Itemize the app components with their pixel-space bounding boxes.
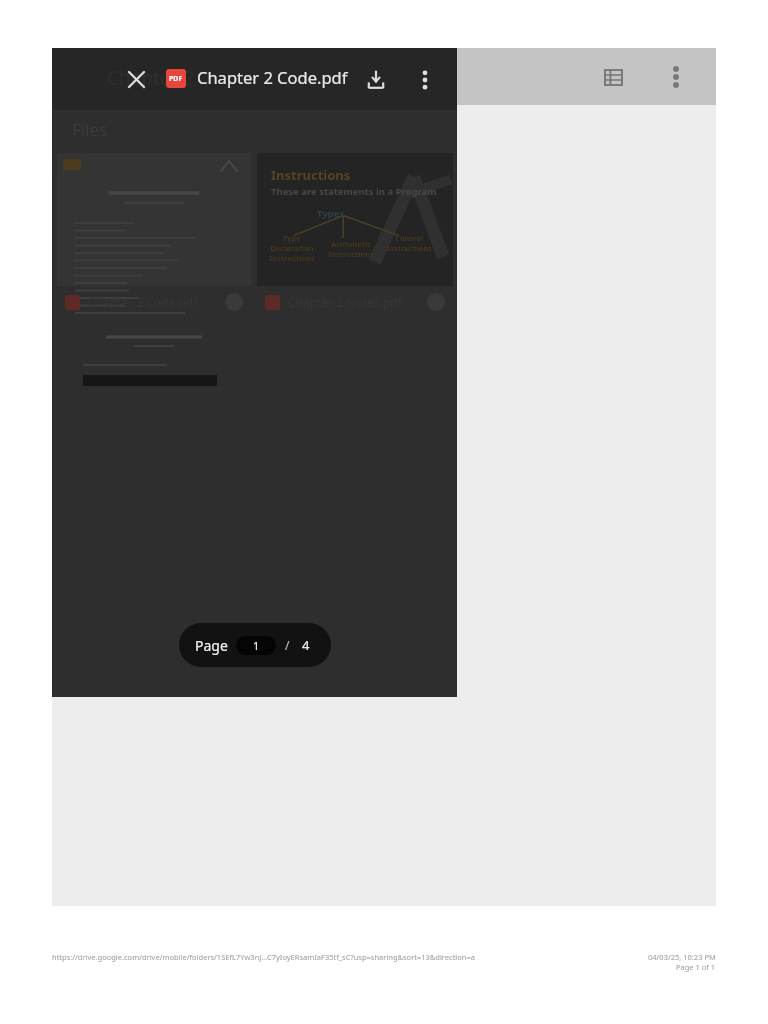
staticText: PDF	[169, 74, 183, 84]
button[interactable]: More options	[407, 62, 443, 98]
staticText: Page 1 of 1	[676, 962, 716, 972]
staticText: Chapter 2 Code.pdf	[197, 66, 348, 88]
staticText: 4	[302, 636, 310, 654]
staticText: 04/03/25, 10:23 PM	[648, 952, 716, 962]
staticText: Files	[72, 118, 108, 141]
staticText: Types	[317, 207, 345, 220]
button[interactable]: More options	[660, 61, 692, 93]
staticText: Arithmetic Instructions	[323, 239, 379, 259]
staticText: Type Declaration Instructions	[261, 233, 323, 263]
button[interactable]: Download	[358, 62, 394, 98]
button[interactable]: File info	[225, 293, 243, 311]
button[interactable]: File info	[427, 293, 445, 311]
button[interactable]: Instructions	[255, 150, 455, 320]
button[interactable]: Close	[120, 63, 152, 95]
staticText: Chapter 2	[107, 65, 195, 91]
button[interactable]: List view	[597, 61, 629, 93]
staticText: Instructions	[271, 166, 351, 184]
staticText: Page	[195, 636, 228, 655]
button[interactable]: Page	[179, 623, 331, 667]
staticText: Control Instructions	[381, 233, 437, 253]
staticText: /	[285, 637, 290, 653]
staticText: 1	[253, 638, 260, 653]
button[interactable]: Chapter 2 Code.pdf	[55, 150, 253, 320]
staticText: Chapter 2 Code.pdf	[88, 294, 198, 310]
staticText: These are statements in a Program	[271, 185, 437, 198]
staticText: https://drive.google.com/drive/mobile/fo…	[52, 952, 475, 962]
